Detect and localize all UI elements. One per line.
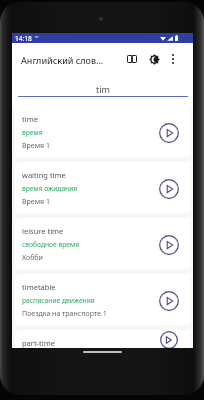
staticText: кг: [35, 34, 40, 40]
staticText: tim: [96, 83, 110, 95]
button[interactable]: waiting time: [15, 162, 190, 213]
staticText: leisure time: [22, 226, 64, 236]
button[interactable]: Play pronunciation: [159, 331, 179, 348]
staticText: Хобби: [22, 253, 43, 263]
staticText: расписание движения: [22, 296, 95, 305]
button[interactable]: Play pronunciation: [159, 291, 179, 311]
staticText: время: [22, 128, 43, 137]
button[interactable]: timetable: [15, 274, 190, 325]
staticText: part-time: [22, 338, 55, 348]
button[interactable]: time: [15, 106, 190, 157]
staticText: Поездка на транспорте 1: [22, 309, 107, 319]
button[interactable]: Toggle theme: [144, 49, 164, 69]
button[interactable]: Play pronunciation: [159, 179, 179, 199]
staticText: время ожидания: [22, 184, 78, 193]
staticText: timetable: [22, 282, 56, 292]
staticText: Английский слов...: [21, 54, 104, 66]
staticText: waiting time: [22, 170, 66, 180]
button[interactable]: Play pronunciation: [159, 235, 179, 255]
staticText: свободное время: [22, 240, 80, 249]
staticText: Время 1: [22, 197, 50, 207]
button[interactable]: More options: [163, 49, 183, 69]
button[interactable]: part-time: [15, 330, 190, 348]
button[interactable]: leisure time: [15, 218, 190, 269]
button[interactable]: Play pronunciation: [159, 123, 179, 143]
button[interactable]: Dictionary: [122, 49, 142, 69]
staticText: 14:18: [15, 34, 32, 43]
staticText: Время 1: [22, 141, 50, 151]
staticText: time: [22, 114, 38, 124]
